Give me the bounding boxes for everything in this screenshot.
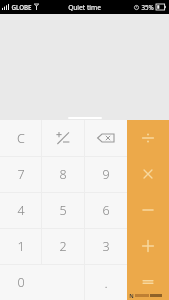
button[interactable]: 6	[85, 193, 127, 228]
button[interactable]: 4	[0, 193, 41, 228]
staticText: N	[129, 292, 134, 299]
button[interactable]: 9	[85, 157, 127, 192]
staticText: 7	[17, 166, 25, 183]
staticText: Quiet time	[68, 3, 101, 12]
staticText: 8	[59, 166, 67, 183]
staticText: 4	[17, 202, 25, 219]
staticText: 9	[102, 166, 110, 183]
button[interactable]: Subtract	[127, 192, 169, 228]
staticText: .	[104, 274, 108, 292]
staticText: 5	[59, 202, 67, 219]
button[interactable]: 2	[42, 229, 84, 264]
button[interactable]: Plus minus	[42, 120, 84, 156]
staticText: GLOBE	[11, 3, 32, 11]
button[interactable]: 8	[42, 157, 84, 192]
staticText: 1	[17, 238, 25, 255]
button[interactable]: Add	[127, 228, 169, 264]
staticText: C	[17, 130, 25, 147]
button[interactable]: Multiply	[127, 156, 169, 192]
staticText: 2	[59, 238, 67, 255]
staticText: 3	[102, 238, 110, 255]
staticText: 0	[17, 274, 25, 291]
staticText: 6	[102, 202, 110, 219]
button[interactable]: 7	[0, 157, 41, 192]
button[interactable]: 0	[0, 265, 84, 300]
button[interactable]: C	[0, 120, 41, 156]
button[interactable]: Equals	[127, 264, 169, 300]
button[interactable]: 5	[42, 193, 84, 228]
button[interactable]: Divide	[127, 120, 169, 156]
button[interactable]: 3	[85, 229, 127, 264]
button[interactable]: 1	[0, 229, 41, 264]
staticText: 35%	[141, 3, 154, 11]
button[interactable]: Backspace	[85, 120, 127, 156]
